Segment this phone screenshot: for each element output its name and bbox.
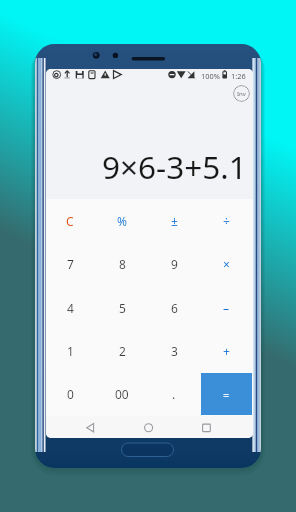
staticText: 4 [67,300,74,316]
staticText: 6 [171,300,178,316]
staticText: Inv [237,90,246,98]
button[interactable]: 0 [46,372,96,415]
staticText: × [223,256,230,272]
button[interactable]: 9 [148,242,200,285]
staticText: ± [171,213,178,229]
staticText: 9×6-3+5.1 [102,145,247,188]
staticText: = [223,387,230,402]
staticText: 1 [67,343,74,359]
staticText: 1:26 [231,71,246,81]
staticText: 00 [115,386,129,402]
staticText: 3 [171,343,178,359]
staticText: 7 [67,256,74,272]
button[interactable]: 3 [148,329,200,372]
button[interactable]: 7 [46,242,96,285]
staticText: % [117,213,127,229]
staticText: 0 [67,386,74,402]
staticText: . [172,386,176,402]
button[interactable]: C [46,199,96,242]
staticText: 9 [171,256,178,272]
button[interactable]: Inverse [233,85,250,102]
button[interactable]: + [200,329,252,372]
staticText: – [223,300,230,316]
staticText: 100% [201,71,220,81]
staticText: ÷ [223,213,230,229]
staticText: 2 [119,343,126,359]
staticText: 5 [119,300,126,316]
staticText: + [223,343,230,359]
button[interactable]: ± [148,199,200,242]
button[interactable]: × [200,242,252,285]
button[interactable]: . [148,372,200,415]
button[interactable]: % [96,199,148,242]
staticText: C [66,213,74,229]
button[interactable]: – [200,286,252,329]
button[interactable]: 4 [46,286,96,329]
button[interactable]: 1 [46,329,96,372]
button[interactable]: ÷ [200,199,252,242]
button[interactable]: 00 [96,372,148,415]
button[interactable]: 2 [96,329,148,372]
staticText: 8 [119,256,126,272]
button[interactable]: 5 [96,286,148,329]
button[interactable]: 8 [96,242,148,285]
button[interactable]: = [201,373,252,415]
button[interactable]: 6 [148,286,200,329]
